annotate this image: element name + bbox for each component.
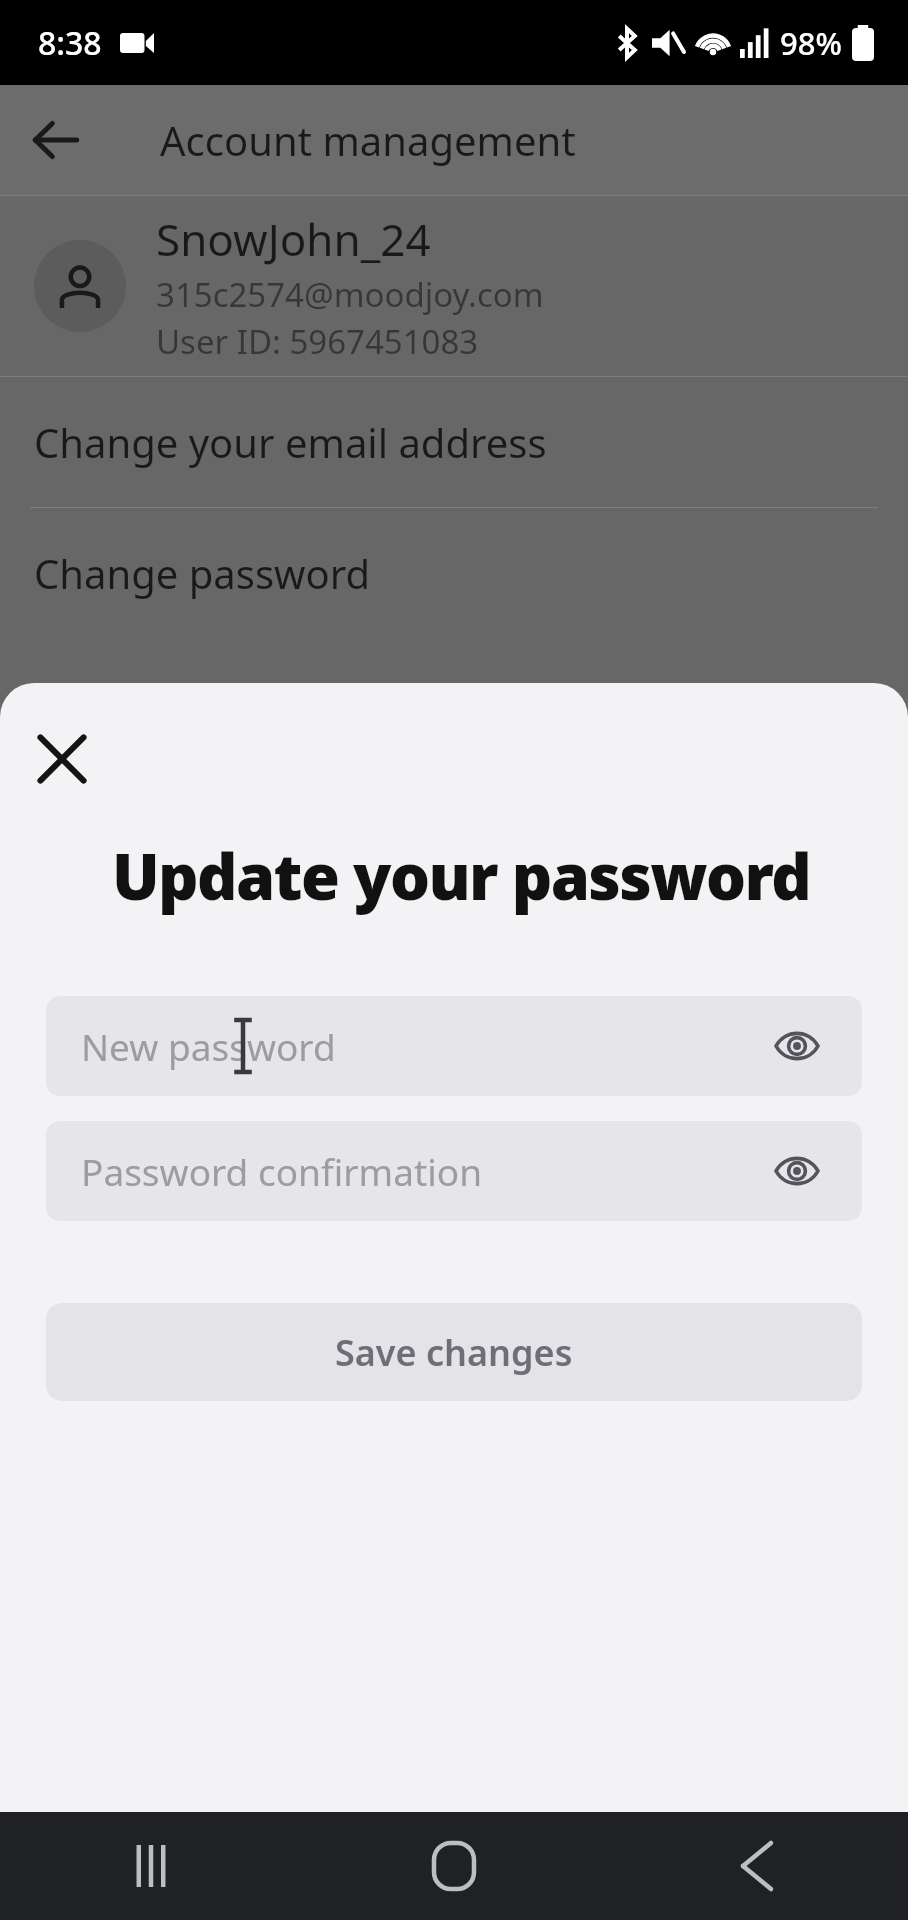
- button[interactable]: SnowJohn_24: [0, 196, 908, 376]
- button[interactable]: Home: [302, 1812, 605, 1920]
- button[interactable]: Show password: [760, 1009, 834, 1083]
- button[interactable]: Back: [605, 1812, 908, 1920]
- button[interactable]: Change password: [0, 508, 908, 638]
- button[interactable]: Password confirmation: [46, 1121, 862, 1221]
- button[interactable]: New password: [46, 996, 862, 1096]
- button[interactable]: Recent apps: [0, 1812, 302, 1920]
- staticText: Change your email address: [34, 415, 547, 469]
- staticText: 98%: [780, 22, 842, 64]
- button[interactable]: Back: [18, 102, 94, 178]
- button[interactable]: Show password: [760, 1134, 834, 1208]
- button[interactable]: Save changes: [46, 1303, 862, 1401]
- staticText: New password: [81, 1021, 336, 1071]
- staticText: Update your password: [112, 833, 811, 919]
- staticText: Password confirmation: [81, 1146, 483, 1196]
- button[interactable]: Close: [26, 723, 98, 795]
- staticText: Save changes: [335, 1328, 573, 1377]
- button[interactable]: Change your email address: [0, 377, 908, 507]
- staticText: 315c2574@moodjoy.com: [156, 272, 544, 317]
- staticText: Account management: [160, 113, 576, 167]
- staticText: SnowJohn_24: [156, 209, 431, 269]
- staticText: Change password: [34, 546, 371, 600]
- staticText: 8:38: [38, 21, 102, 65]
- staticText: User ID: 5967451083: [156, 319, 479, 364]
